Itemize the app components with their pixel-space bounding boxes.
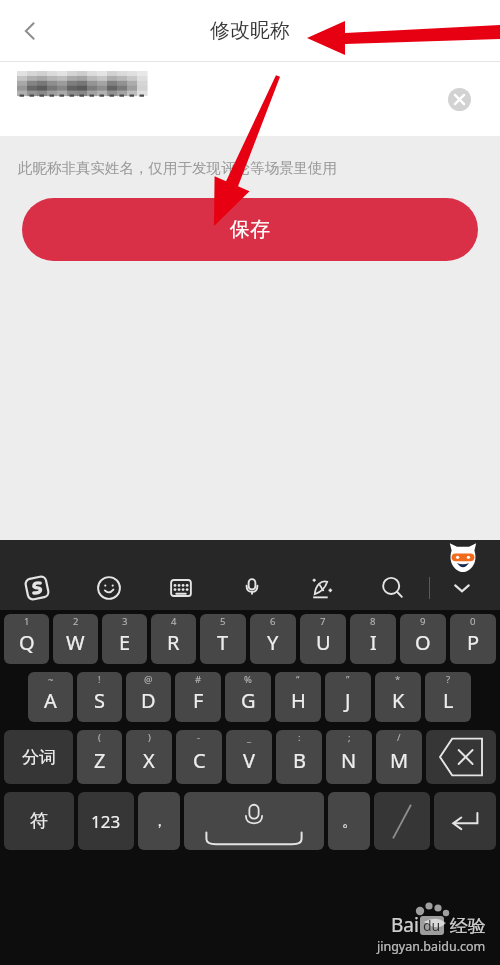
staticText: 2 [73, 615, 79, 628]
staticText: L [443, 687, 454, 714]
button[interactable]: Switch Chinese English [374, 792, 430, 850]
button[interactable]: @ [126, 672, 171, 722]
staticText: 9 [420, 615, 426, 628]
button[interactable]: 5 [200, 614, 246, 664]
button[interactable]: Hide keyboard [430, 566, 494, 610]
staticText: ? [446, 673, 451, 686]
staticText: ~ [48, 673, 54, 686]
button[interactable]: 4 [151, 614, 196, 664]
staticText: 修改昵称 [210, 18, 290, 43]
staticText: A [44, 687, 57, 714]
button[interactable]: 123 [78, 792, 134, 850]
button[interactable]: _ [226, 730, 272, 784]
button[interactable]: “ [275, 672, 321, 722]
button[interactable]: 2 [53, 614, 98, 664]
staticText: Q [19, 629, 35, 656]
staticText: K [392, 687, 405, 714]
staticText: 保存 [230, 217, 270, 242]
staticText: _ [247, 731, 252, 744]
staticText: U [316, 629, 331, 656]
staticText: 4 [171, 615, 177, 628]
button[interactable]: ; [326, 730, 372, 784]
button[interactable]: 3 [102, 614, 147, 664]
staticText: : [298, 731, 301, 744]
button[interactable]: ! [77, 672, 122, 722]
staticText: E [119, 629, 131, 656]
button[interactable]: 符 [4, 792, 74, 850]
staticText: 1 [24, 615, 30, 628]
button[interactable]: Keyboard layout [144, 566, 217, 610]
button[interactable]: 1 [4, 614, 49, 664]
button[interactable]: ) [126, 730, 172, 784]
staticText: 8 [370, 615, 376, 628]
staticText: Bai [391, 912, 419, 938]
button[interactable]: ~ [28, 672, 73, 722]
staticText: G [241, 687, 256, 714]
staticText: ， [152, 812, 167, 831]
staticText: Y [267, 629, 279, 656]
staticText: P [467, 629, 480, 656]
button[interactable]: 保存 [22, 198, 478, 261]
staticText: du [423, 916, 441, 935]
staticText: B [293, 747, 306, 774]
button[interactable]: 6 [250, 614, 296, 664]
button[interactable]: 7 [300, 614, 346, 664]
button[interactable]: Sogou input method [0, 566, 74, 610]
button[interactable]: 8 [350, 614, 396, 664]
staticText: 123 [91, 810, 121, 833]
button[interactable]: # [175, 672, 221, 722]
button[interactable]: 0 [450, 614, 496, 664]
button[interactable]: Emoji [74, 566, 144, 610]
button[interactable]: Voice input [217, 566, 287, 610]
staticText: * [395, 673, 401, 686]
staticText: - [197, 731, 201, 744]
button[interactable]: Space [184, 792, 324, 850]
staticText: ) [148, 731, 151, 744]
staticText: 6 [270, 615, 276, 628]
button[interactable]: ， [138, 792, 180, 850]
button[interactable]: ( [77, 730, 122, 784]
staticText: F [193, 687, 204, 714]
staticText: # [195, 673, 202, 686]
staticText: ! [98, 673, 101, 686]
button[interactable]: : [276, 730, 322, 784]
staticText: “ [296, 673, 300, 686]
button[interactable]: Backspace [426, 730, 496, 784]
button[interactable]: % [225, 672, 271, 722]
staticText: S [94, 687, 105, 714]
staticText: 符 [30, 810, 48, 833]
staticText: N [341, 747, 357, 774]
button[interactable]: Clear text [441, 81, 477, 117]
button[interactable]: 。 [328, 792, 370, 850]
staticText: I [370, 629, 377, 656]
staticText: 7 [320, 615, 326, 628]
button[interactable]: * [375, 672, 421, 722]
button[interactable]: ” [325, 672, 371, 722]
staticText: % [244, 673, 252, 686]
button[interactable]: Enter [434, 792, 496, 850]
staticText: / [397, 731, 401, 744]
button[interactable]: Assistant mascot [448, 542, 478, 572]
staticText: H [291, 687, 306, 714]
button[interactable]: / [376, 730, 422, 784]
staticText: C [193, 747, 206, 774]
staticText: jingyan.baidu.com [377, 938, 486, 955]
staticText: ” [346, 673, 350, 686]
staticText: R [167, 629, 180, 656]
button[interactable]: 分词 [4, 730, 73, 784]
button[interactable]: 9 [400, 614, 446, 664]
staticText: 分词 [22, 747, 56, 768]
staticText: O [415, 629, 431, 656]
staticText: Z [94, 747, 106, 774]
button[interactable]: Search [357, 566, 429, 610]
button[interactable]: - [176, 730, 222, 784]
staticText: 。 [342, 812, 357, 831]
staticText: @ [144, 673, 153, 686]
button[interactable]: ? [425, 672, 471, 722]
staticText: ; [348, 731, 351, 744]
staticText: 3 [122, 615, 128, 628]
button[interactable]: Back [0, 0, 60, 61]
staticText: M [390, 747, 409, 774]
staticText: W [66, 629, 85, 656]
button[interactable]: Handwriting [287, 566, 357, 610]
